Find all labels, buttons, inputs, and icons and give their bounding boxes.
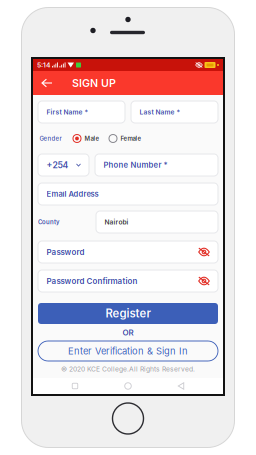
staticText: Female — [120, 135, 141, 142]
staticText: +254 — [46, 160, 68, 170]
staticText: SIGN UP — [72, 76, 116, 89]
button[interactable]: Phone Number * — [95, 154, 218, 176]
staticText: Phone Number * — [103, 160, 167, 170]
button[interactable]: Enter Verification & Sign In — [38, 341, 218, 361]
button[interactable]: Last Name * — [131, 101, 218, 123]
staticText: © 2020 KCE College.All Rights Reserved. — [61, 365, 195, 373]
staticText: Enter Verification & Sign In — [68, 345, 188, 357]
staticText: First Name * — [46, 108, 88, 116]
button[interactable]: Email Address — [38, 183, 218, 205]
staticText: OR — [122, 328, 133, 337]
staticText: County — [38, 218, 60, 226]
button[interactable]: Register — [38, 303, 218, 324]
button[interactable]: Back — [33, 71, 61, 95]
button[interactable]: Password — [38, 241, 218, 263]
button[interactable]: Recent apps — [64, 378, 86, 394]
staticText: Nairobi — [104, 218, 128, 226]
button[interactable]: First Name * — [38, 101, 125, 123]
staticText: 5:14 — [37, 61, 50, 69]
staticText: Male — [84, 135, 99, 142]
staticText: Register — [105, 307, 150, 320]
button[interactable]: +254 — [38, 154, 89, 176]
button[interactable]: Back — [170, 378, 192, 394]
button[interactable]: Home — [117, 378, 139, 394]
staticText: Password Confirmation — [46, 276, 137, 286]
button[interactable]: Password Confirmation — [38, 270, 218, 292]
staticText: Password — [46, 247, 84, 257]
button[interactable]: Nairobi — [96, 211, 218, 233]
staticText: Email Address — [46, 189, 98, 199]
staticText: Last Name * — [139, 108, 180, 116]
staticText: Gender — [39, 135, 61, 142]
